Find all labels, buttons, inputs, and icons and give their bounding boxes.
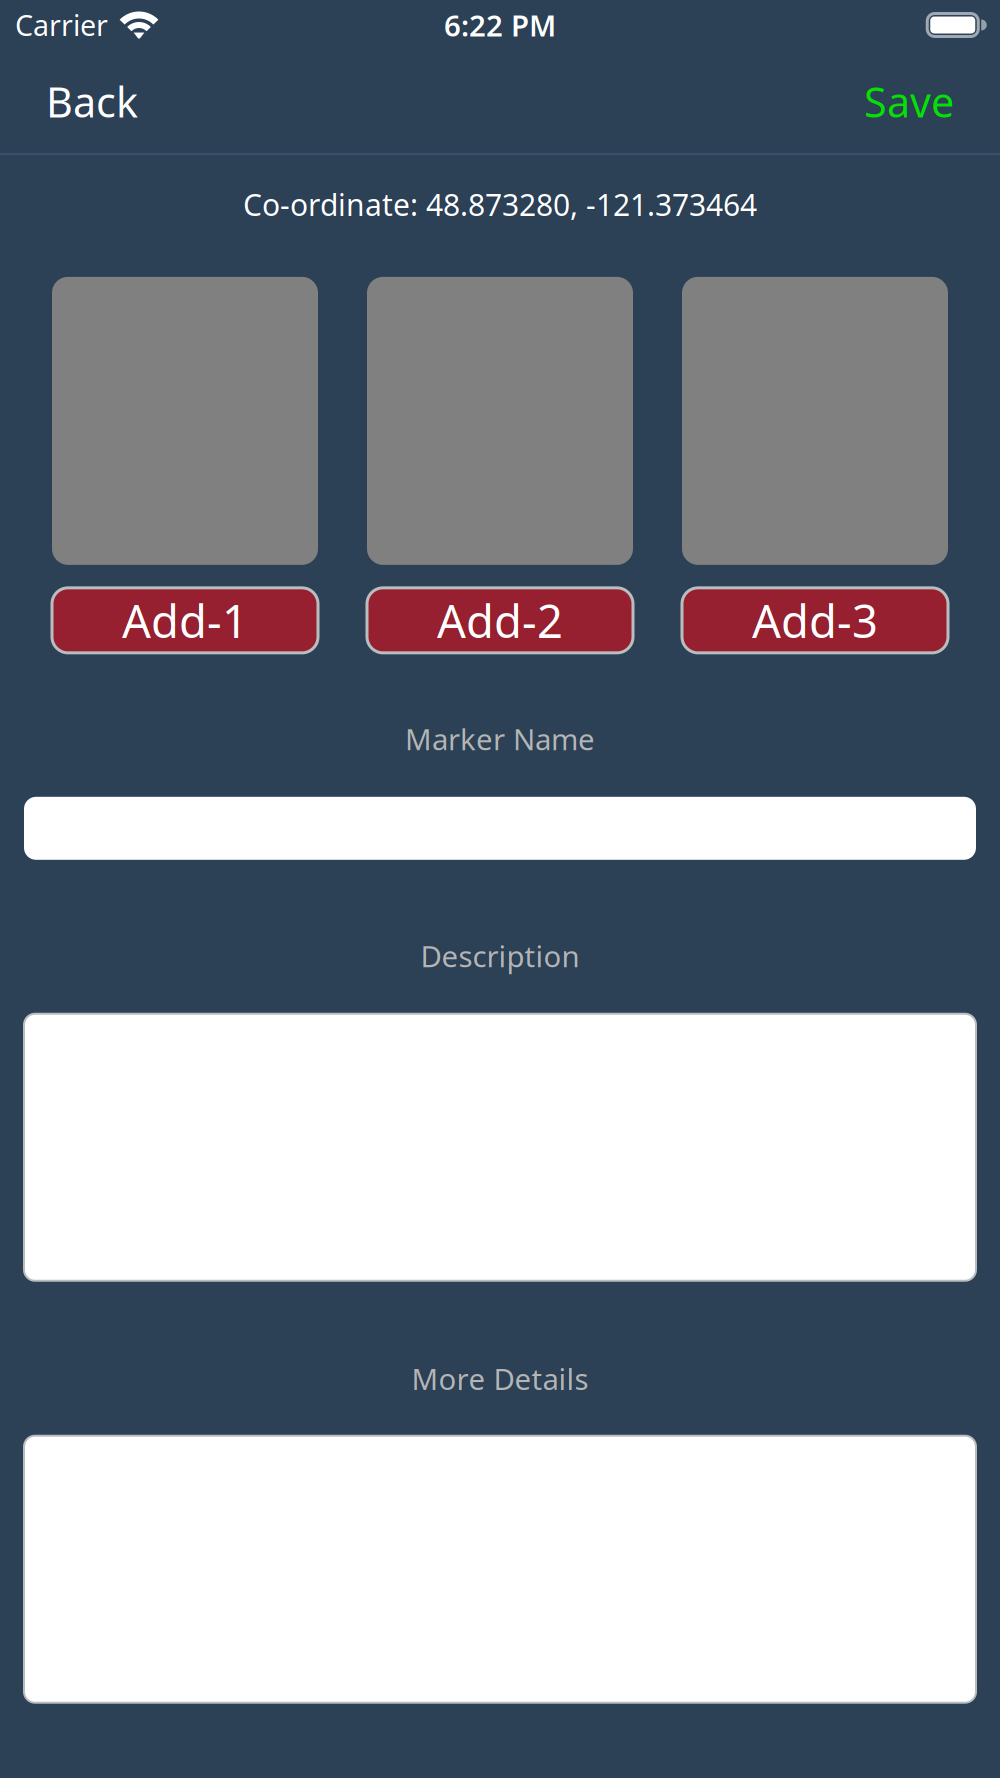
button[interactable]: Back [46, 73, 138, 130]
button[interactable]: Marker Name [0, 797, 1000, 860]
button[interactable]: Add-2 [367, 588, 633, 653]
staticText: Marker Name [405, 719, 595, 759]
staticText: More Details [411, 1359, 588, 1399]
staticText: Co-ordinate: 48.873280, -121.373464 [243, 184, 757, 225]
button[interactable]: Choose photo for Add-1 [52, 277, 318, 565]
button[interactable]: Add-3 [682, 588, 948, 653]
button[interactable]: Description [0, 1014, 1000, 1281]
staticText: Description [420, 936, 579, 976]
staticText: Add-2 [437, 589, 563, 651]
staticText: 6:22 PM [444, 5, 556, 45]
button[interactable]: Save [864, 73, 954, 130]
button[interactable]: Choose photo for Add-3 [682, 277, 948, 565]
button[interactable]: Choose photo for Add-2 [367, 277, 633, 565]
staticText: Add-3 [752, 589, 878, 651]
staticText: Add-1 [122, 589, 248, 651]
staticText: Carrier [15, 5, 108, 44]
button[interactable]: Add-1 [52, 588, 318, 653]
staticText: Back [46, 73, 138, 130]
staticText: Save [864, 73, 954, 130]
button[interactable]: More Details [0, 1436, 1000, 1703]
